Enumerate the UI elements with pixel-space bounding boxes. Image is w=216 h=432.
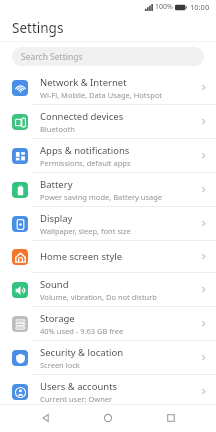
staticText: Users & accounts [40,380,118,393]
button[interactable]: Home [91,404,125,432]
staticText: Settings [12,19,64,37]
staticText: Wi-Fi, Mobile, Data Usage, Hotspot [40,90,163,100]
button[interactable]: Apps & notifications [0,139,216,173]
staticText: Home screen style [40,250,123,263]
staticText: Network & Internet [40,76,127,89]
staticText: Battery [40,178,73,191]
staticText: Volume, vibration, Do not disturb [40,292,157,302]
staticText: Wallpaper, sleep, font size [40,226,131,236]
staticText: Display [40,212,73,225]
staticText: Storage [40,312,75,325]
staticText: Apps & notifications [40,144,130,157]
button[interactable]: Recents [154,404,188,432]
staticText: Power saving mode, Battery usage [40,192,163,202]
button[interactable]: Search Settings [12,47,204,66]
staticText: Screen lock [40,360,80,370]
staticText: Search Settings [21,51,83,63]
button[interactable]: Network & Internet [0,71,216,105]
staticText: Current user: Owner [40,394,113,404]
staticText: 100% [155,2,173,12]
button[interactable]: Connected devices [0,105,216,139]
button[interactable]: Users & accounts [0,375,216,404]
button[interactable]: Sound [0,273,216,307]
staticText: Bluetooth [40,124,75,134]
button[interactable]: Storage [0,307,216,341]
staticText: Security & location [40,346,124,359]
staticText: Permissions, default apps [40,158,131,168]
staticText: 10:00 [190,2,210,12]
button[interactable]: Home screen style [0,241,216,273]
staticText: Sound [40,278,69,291]
staticText: Connected devices [40,110,124,123]
staticText: 40% used - 9.63 GB free [40,326,124,336]
button[interactable]: Display [0,207,216,241]
button[interactable]: Battery [0,173,216,207]
button[interactable]: Security & location [0,341,216,375]
button[interactable]: Back [29,404,63,432]
